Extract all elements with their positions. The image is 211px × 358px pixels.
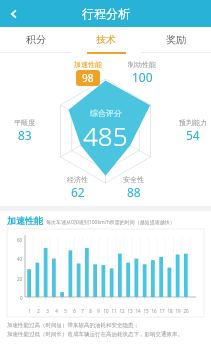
button[interactable]: 技术 — [71, 27, 141, 52]
staticText: 安全性 — [123, 175, 144, 184]
staticText: 12 — [119, 308, 125, 314]
staticText: 综合评分 — [90, 108, 122, 118]
staticText: 技术 — [96, 33, 116, 46]
staticText: 加速性能 — [7, 215, 43, 226]
staticText: 88 — [127, 184, 141, 200]
button[interactable]: Back — [0, 0, 28, 27]
staticText: 83 — [18, 127, 32, 143]
staticText: 加速性能过低（时间长）造成车辆运行在高油耗状态下，影响交通效率。 — [7, 331, 183, 338]
staticText: 预判能力 — [179, 118, 207, 127]
staticText: 40 — [17, 256, 23, 262]
button[interactable]: 积分 — [0, 27, 71, 52]
staticText: 4 — [55, 308, 58, 314]
staticText: 2 — [37, 308, 40, 314]
staticText: 16 — [151, 308, 157, 314]
staticText: 20 — [183, 308, 189, 314]
staticText: 485 — [83, 118, 128, 153]
staticText: 13 — [127, 308, 133, 314]
staticText: 平顺度 — [14, 118, 35, 127]
staticText: 60 — [17, 237, 23, 243]
staticText: 14 — [135, 308, 141, 314]
staticText: 3 — [46, 308, 49, 314]
staticText: 9 — [97, 308, 100, 314]
staticText: 54 — [186, 127, 200, 143]
staticText: 1 — [28, 308, 31, 314]
staticText: 加速性能 — [74, 60, 102, 69]
staticText: 7 — [81, 308, 84, 314]
staticText: 制动性能 — [128, 60, 156, 69]
staticText: 6 — [73, 308, 76, 314]
staticText: 经济性 — [67, 175, 88, 184]
staticText: 62 — [71, 184, 85, 200]
staticText: 加速性能过高（时间短）带来较高的油耗和安全隐患； — [7, 322, 139, 329]
staticText: 18 — [167, 308, 173, 314]
staticText: 17 — [159, 308, 165, 314]
staticText: 19 — [175, 308, 181, 314]
button[interactable]: 奖励 — [141, 27, 211, 52]
staticText: 10 — [103, 308, 109, 314]
staticText: 奖励 — [166, 33, 186, 46]
staticText: 15 — [143, 308, 149, 314]
staticText: 11 — [111, 308, 117, 314]
staticText: 8 — [89, 308, 92, 314]
staticText: 行程分析 — [82, 6, 130, 21]
staticText: 积分 — [26, 33, 46, 46]
staticText: 每次车速从0加速到100km/h所需的时间（越短提速越快） — [46, 219, 175, 226]
staticText: 100 — [132, 69, 153, 85]
staticText: 5 — [64, 308, 67, 314]
staticText: 0 — [20, 295, 23, 301]
staticText: 98 — [82, 71, 94, 85]
staticText: 20 — [17, 276, 23, 282]
